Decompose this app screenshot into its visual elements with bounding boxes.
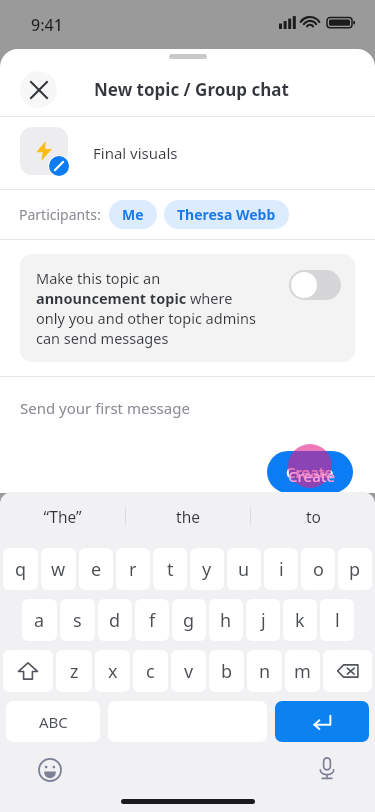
staticText: h	[220, 608, 232, 633]
button[interactable]: ABC	[6, 701, 100, 742]
button[interactable]: x	[95, 650, 130, 692]
button[interactable]: t	[153, 548, 187, 590]
staticText: i	[279, 557, 284, 582]
button[interactable]: w	[41, 548, 76, 590]
button[interactable]: d	[98, 599, 132, 641]
button[interactable]: q	[3, 548, 38, 590]
button[interactable]: c	[133, 650, 168, 692]
staticText: s	[73, 608, 82, 633]
staticText: ABC	[39, 712, 68, 732]
button[interactable]: h	[209, 599, 243, 641]
button[interactable]: i	[264, 548, 298, 590]
staticText: l	[335, 608, 340, 633]
staticText: t	[167, 557, 174, 582]
button[interactable]: k	[283, 599, 317, 641]
staticText: “The”	[43, 506, 82, 527]
staticText: Make this topic an announcement topic wh…	[36, 268, 258, 348]
button[interactable]: g	[172, 599, 206, 641]
button[interactable]: l	[320, 599, 354, 641]
button[interactable]: y	[190, 548, 224, 590]
button[interactable]: Backspace	[323, 650, 372, 692]
button[interactable]: e	[79, 548, 113, 590]
staticText: r	[129, 557, 137, 582]
staticText: o	[313, 557, 324, 582]
staticText: 9:41	[31, 14, 63, 36]
button[interactable]: b	[209, 650, 244, 692]
button[interactable]: o	[301, 548, 335, 590]
staticText: u	[238, 557, 250, 582]
button[interactable]: m	[285, 650, 320, 692]
staticText: p	[349, 557, 361, 582]
staticText: f	[149, 608, 156, 633]
staticText: z	[70, 659, 79, 684]
staticText: w	[51, 557, 66, 582]
button[interactable]: Enter	[275, 701, 369, 742]
staticText: y	[202, 557, 212, 582]
button[interactable]: “The”	[0, 492, 125, 540]
button[interactable]: j	[246, 599, 280, 641]
staticText: Create	[286, 462, 334, 482]
button[interactable]: to	[251, 492, 375, 540]
staticText: v	[184, 659, 194, 684]
staticText: Theresa Webb	[177, 205, 276, 224]
button[interactable]: Create	[267, 451, 353, 493]
button[interactable]: s	[60, 599, 95, 641]
staticText: to	[306, 506, 321, 527]
staticText: Participants:	[19, 205, 101, 224]
staticText: k	[295, 608, 305, 633]
staticText: q	[15, 557, 27, 582]
button[interactable]: f	[135, 599, 169, 641]
button[interactable]: Final visuals	[0, 117, 375, 189]
button[interactable]: the	[126, 492, 250, 540]
staticText: a	[34, 608, 45, 633]
staticText: Final visuals	[93, 143, 178, 163]
button[interactable]: v	[171, 650, 206, 692]
staticText: m	[294, 659, 311, 684]
staticText: x	[108, 659, 118, 684]
button[interactable]: Me	[109, 200, 157, 229]
staticText: Send your first message	[20, 398, 190, 418]
button[interactable]: Emoji	[36, 756, 64, 784]
button[interactable]: u	[227, 548, 261, 590]
staticText: Me	[122, 205, 144, 224]
staticText: e	[91, 557, 102, 582]
staticText: b	[221, 659, 233, 684]
button[interactable]: Announcement topic toggle	[289, 270, 341, 300]
staticText: Create	[288, 466, 336, 486]
button[interactable]: Voice input	[313, 754, 341, 782]
button[interactable]: r	[116, 548, 150, 590]
staticText: n	[259, 659, 271, 684]
button[interactable]: a	[22, 599, 57, 641]
staticText: the	[176, 506, 200, 527]
staticText: c	[146, 659, 155, 684]
button[interactable]: p	[338, 548, 372, 590]
staticText: New topic / Group chat	[94, 78, 289, 101]
button[interactable]: Close	[20, 71, 57, 108]
button[interactable]: Shift	[3, 650, 53, 692]
button[interactable]: Make this topic an announcement topic wh…	[20, 254, 355, 362]
button[interactable]: z	[56, 650, 92, 692]
button[interactable]: Theresa Webb	[164, 200, 289, 229]
button[interactable]: n	[247, 650, 282, 692]
staticText: g	[183, 608, 195, 633]
staticText: d	[109, 608, 121, 633]
staticText: j	[261, 608, 266, 633]
